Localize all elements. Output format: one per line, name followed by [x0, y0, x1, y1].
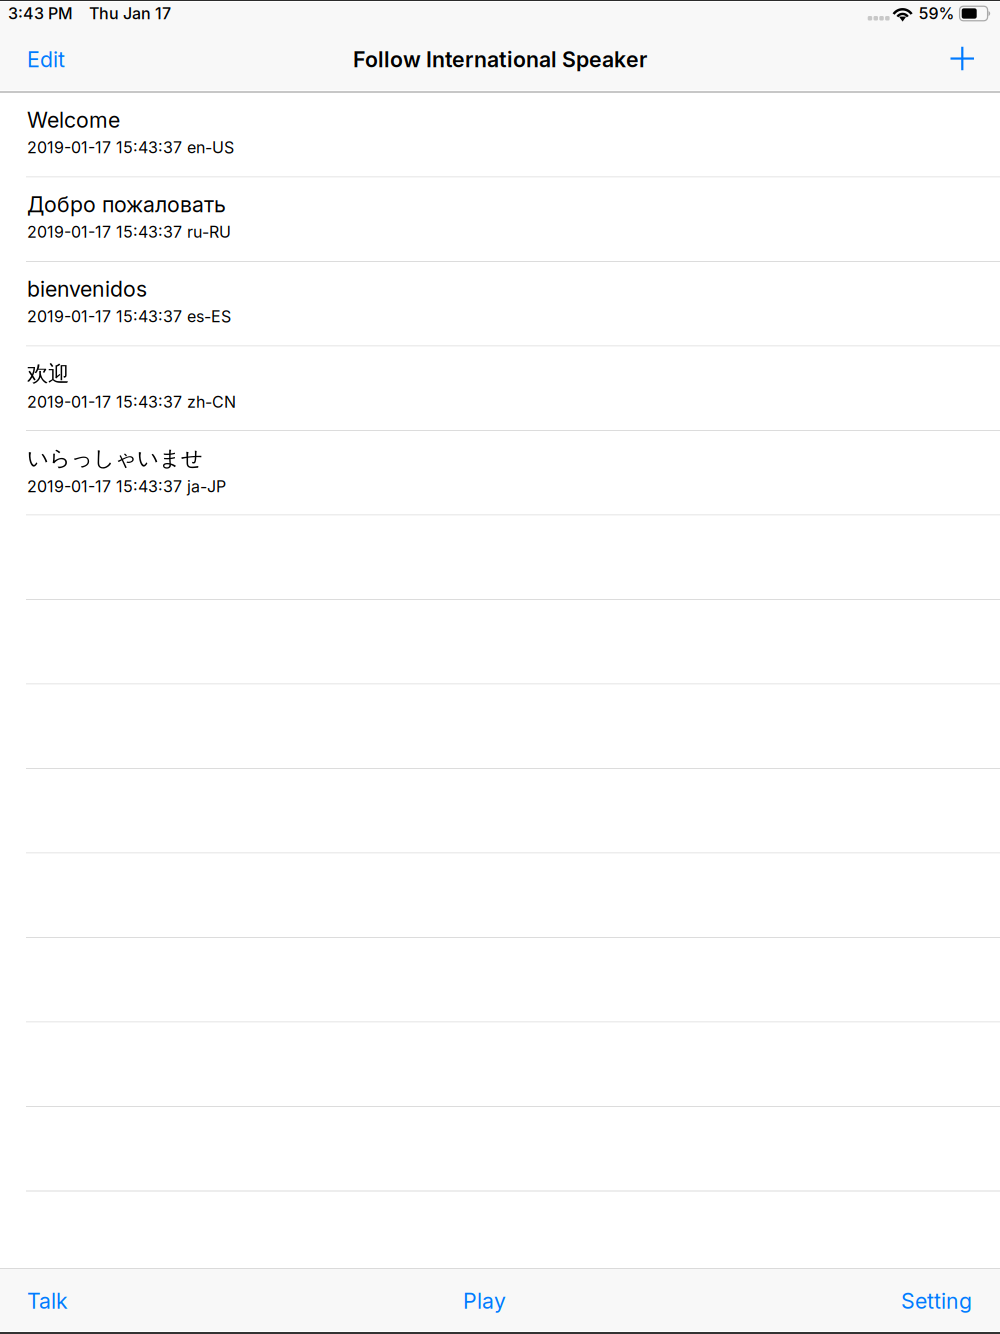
staticText: Добро пожаловать	[27, 191, 226, 217]
staticText: 欢迎	[27, 360, 69, 387]
staticText: 2019-01-17 15:43:37 zh-CN	[27, 392, 236, 412]
button[interactable]: Play	[453, 1275, 516, 1325]
button[interactable]: 欢迎	[0, 346, 1000, 431]
staticText: 59%	[919, 4, 955, 23]
button[interactable]: bienvenidos	[0, 262, 1000, 346]
staticText: Welcome	[27, 107, 120, 133]
button[interactable]: Talk	[17, 1275, 78, 1325]
button[interactable]: Welcome	[0, 93, 1000, 177]
staticText: いらっしゃいませ	[27, 445, 203, 472]
staticText: 2019-01-17 15:43:37 en-US	[27, 138, 234, 157]
staticText: Talk	[27, 1288, 68, 1314]
staticText: bienvenidos	[27, 276, 147, 302]
staticText: Setting	[901, 1288, 972, 1314]
staticText: Thu Jan 17	[89, 4, 171, 23]
button[interactable]: Add	[938, 36, 985, 79]
staticText: 2019-01-17 15:43:37 ru-RU	[27, 222, 231, 242]
staticText: Follow International Speaker	[353, 47, 647, 72]
staticText: 2019-01-17 15:43:37 es-ES	[27, 307, 231, 326]
button[interactable]: Setting	[891, 1275, 982, 1325]
button[interactable]: Edit	[17, 32, 77, 83]
staticText: Edit	[27, 47, 65, 72]
staticText: 3:43 PM	[8, 4, 73, 23]
button[interactable]: Добро пожаловать	[0, 177, 1000, 262]
button[interactable]: いらっしゃいませ	[0, 431, 1000, 515]
staticText: Play	[463, 1288, 506, 1314]
staticText: 2019-01-17 15:43:37 ja-JP	[27, 477, 226, 496]
